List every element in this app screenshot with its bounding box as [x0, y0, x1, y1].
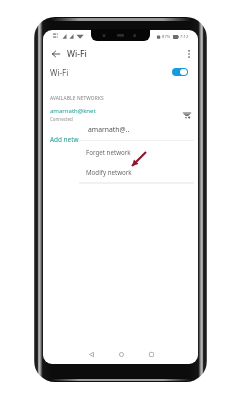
staticText: amarnath@.. [88, 125, 130, 134]
button[interactable]: Back [83, 346, 99, 362]
staticText: Wi-Fi [67, 48, 87, 60]
staticText: AVAILABLE NETWORKS [50, 95, 104, 102]
staticText: 7:12 [180, 34, 189, 40]
button[interactable]: Forget network [79, 141, 194, 162]
button[interactable]: Add network [43, 130, 198, 148]
staticText: 87% [162, 34, 171, 40]
staticText: Wi-Fi [50, 67, 69, 78]
button[interactable]: Recent apps [143, 346, 159, 362]
staticText: Add network [50, 135, 89, 144]
button[interactable]: Navigate up [49, 47, 62, 60]
button[interactable]: amarnath@knet [43, 104, 198, 124]
staticText: Connected [50, 116, 73, 122]
button[interactable]: Modify network [79, 162, 194, 182]
staticText: Forget network [86, 148, 131, 156]
button[interactable]: More options [181, 46, 196, 61]
staticText: Modify network [86, 168, 132, 176]
button[interactable]: Wi-Fi [43, 62, 198, 82]
staticText: amarnath@knet [50, 107, 96, 115]
button[interactable]: Home [113, 346, 129, 362]
